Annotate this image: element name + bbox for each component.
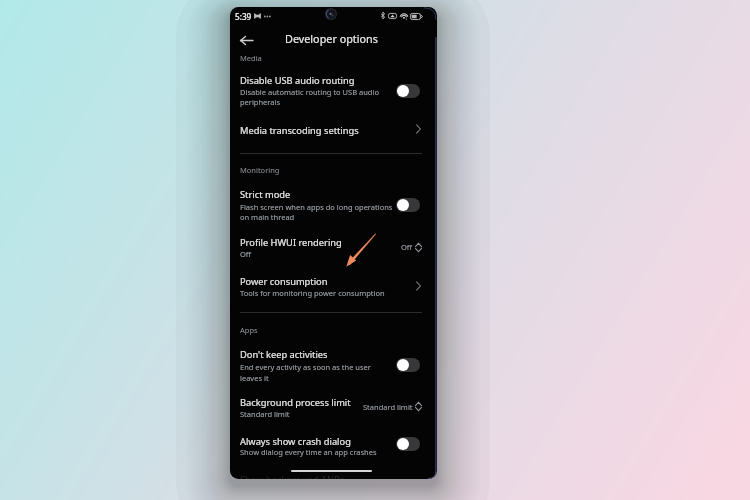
staticText: Apps [240,325,258,335]
staticText: Show dialog every time an app crashes [240,447,377,457]
staticText: on main thread [240,212,295,222]
button[interactable]: Background process limit [240,396,351,409]
button[interactable]: Back [234,28,258,52]
staticText: Tools for monitoring power consumption [240,288,385,298]
staticText: Show background ANRs [240,473,345,479]
button[interactable]: Developer options [285,31,378,46]
button[interactable]: Don't keep activities [240,348,328,361]
staticText: leaves it [240,373,269,383]
button[interactable]: Off [401,242,413,252]
staticText: Flash screen when apps do long operation… [240,202,393,212]
button[interactable]: Toggle off [396,84,420,98]
button[interactable]: Power consumption [240,275,328,288]
button[interactable]: Toggle off [396,358,420,372]
staticText: Off [240,249,252,259]
staticText: Standard limit [240,409,290,419]
button[interactable]: Disable USB audio routing [240,74,355,87]
button[interactable]: Change [415,243,422,252]
button[interactable]: Strict mode [240,188,291,201]
button[interactable]: Open [412,280,424,292]
button[interactable]: Media transcoding settings [240,124,359,137]
staticText: End every activity as soon as the user [240,362,371,372]
button[interactable]: Toggle off [396,437,420,451]
button[interactable]: Toggle off [396,198,420,212]
button[interactable]: Standard limit [363,402,413,412]
staticText: Disable automatic routing to USB audio [240,87,379,97]
button[interactable]: Profile HWUI rendering [240,236,342,249]
staticText: 5:39 [235,11,252,22]
staticText: Media [240,53,262,63]
staticText: Monitoring [240,165,280,175]
button[interactable]: Change [415,402,422,411]
button[interactable]: Always show crash dialog [240,435,351,448]
staticText: peripherals [240,97,281,107]
button[interactable]: Open [412,123,424,135]
